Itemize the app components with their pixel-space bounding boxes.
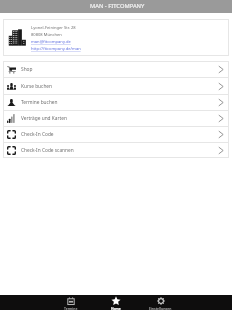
button[interactable]: Kurse buchen (3, 78, 229, 94)
staticText: MAN - FITCOMPANY (90, 2, 145, 10)
staticText: Kurse buchen (21, 83, 53, 90)
button[interactable]: Shop (3, 61, 229, 77)
button[interactable]: Check-In Code scannen (3, 143, 229, 158)
staticText: Check-In Code (21, 131, 54, 138)
staticText: Shop (21, 66, 33, 73)
button[interactable]: Termine buchen (3, 95, 229, 110)
button[interactable]: Einstellungen (138, 295, 183, 310)
button[interactable]: man@fitcompany.de (31, 39, 71, 45)
staticText: Einstellungen (149, 306, 172, 310)
staticText: 80808 München (31, 32, 62, 38)
button[interactable]: http://fitcompany.de/man (31, 46, 81, 52)
button[interactable]: Home (93, 295, 138, 310)
staticText: Check-In Code scannen (21, 147, 74, 154)
button[interactable]: Check-In Code (3, 127, 229, 142)
button[interactable]: Verträge und Karten (3, 111, 229, 126)
staticText: Termine buchen (21, 99, 58, 106)
button[interactable]: Termine (48, 295, 93, 310)
staticText: Verträge und Karten (21, 115, 67, 122)
staticText: Home (111, 306, 121, 310)
staticText: Lyonel-Feininger Str. 28 (31, 25, 76, 31)
staticText: Termine (64, 306, 78, 310)
